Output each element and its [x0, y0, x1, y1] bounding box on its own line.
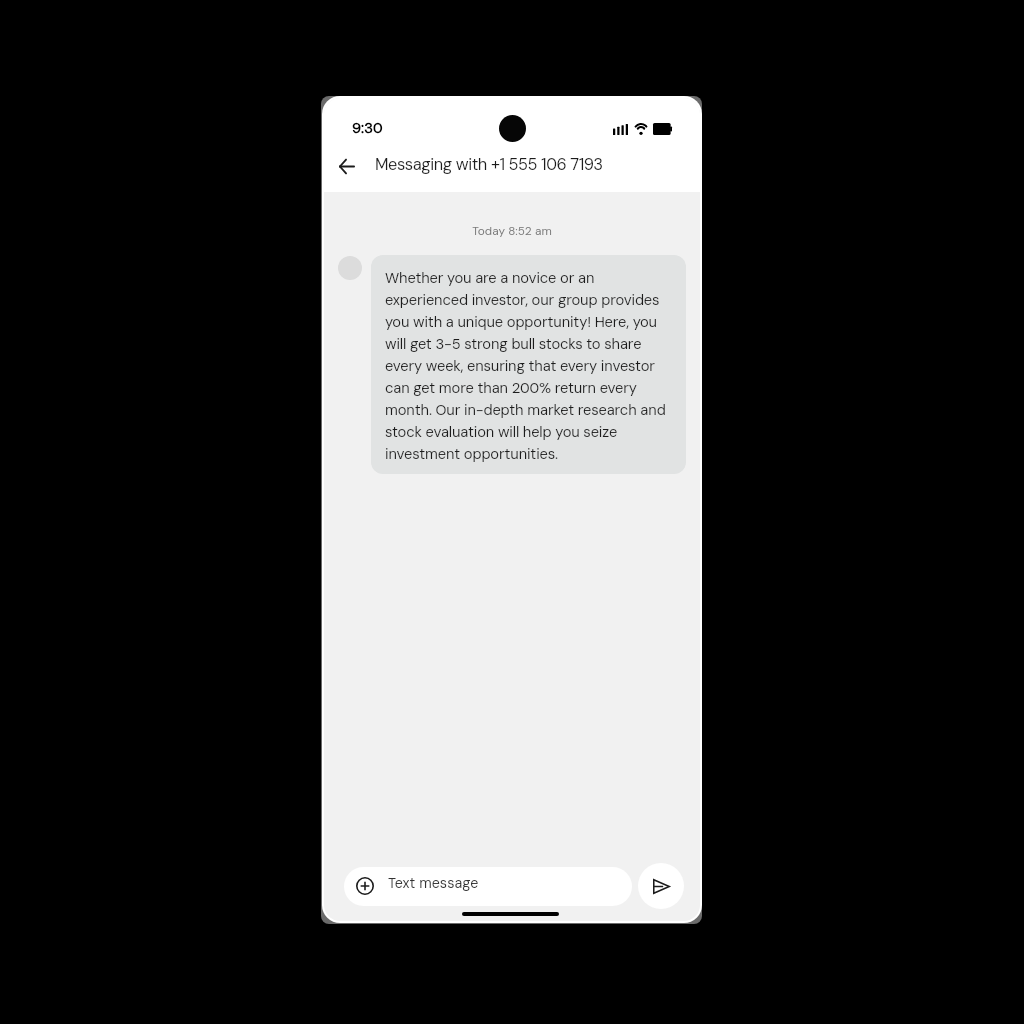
staticText: Text message [388, 874, 479, 893]
staticText: Today 8:52 am [324, 223, 700, 238]
button[interactable]: Back [329, 148, 365, 184]
staticText: 9:30 [352, 119, 383, 138]
button[interactable]: Text message [344, 867, 632, 906]
staticText: Messaging with +1 555 106 7193 [375, 154, 603, 175]
button[interactable]: Send [638, 863, 684, 909]
staticText: Whether you are a novice or an experienc… [385, 268, 673, 464]
button[interactable]: Whether you are a novice or an experienc… [371, 255, 686, 474]
